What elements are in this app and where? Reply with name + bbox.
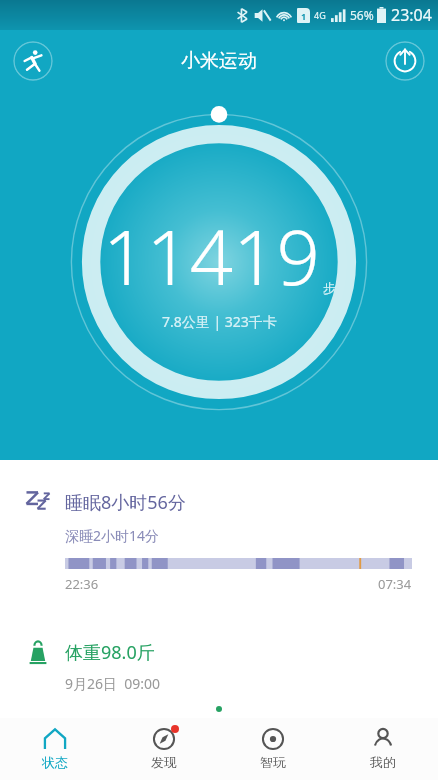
button[interactable]: 我的: [328, 718, 438, 780]
staticText: 体重98.0斤: [65, 640, 155, 665]
staticText: 4G: [314, 9, 326, 21]
other: Bluetooth: [236, 7, 249, 24]
staticText: 智玩: [260, 754, 286, 770]
staticText: 7.8公里 | 323千卡: [162, 312, 277, 331]
staticText: 睡眠8小时56分: [65, 490, 186, 515]
button[interactable]: Start running: [13, 41, 53, 81]
staticText: 小米运动: [181, 49, 257, 73]
staticText: 我的: [370, 754, 396, 770]
staticText: 56%: [350, 7, 374, 23]
other: Signal strength: [330, 8, 347, 23]
staticText: 步: [323, 280, 336, 296]
button[interactable]: 睡眠8小时56分: [0, 460, 438, 622]
staticText: 11419: [103, 204, 320, 308]
button[interactable]: 体重98.0斤: [0, 622, 438, 702]
staticText: 状态: [42, 754, 68, 770]
staticText: 发现: [151, 754, 177, 770]
staticText: 深睡2小时14分: [65, 526, 160, 545]
button[interactable]: Share: [385, 41, 425, 81]
staticText: 9月26日 09:00: [65, 674, 161, 693]
other: Battery 56%: [377, 7, 386, 23]
staticText: 07:34: [378, 575, 412, 593]
button[interactable]: 发现: [109, 718, 218, 780]
other: Silent mode: [254, 8, 271, 23]
staticText: 23:04: [391, 4, 432, 26]
button[interactable]: 智玩: [218, 718, 328, 780]
staticText: 22:36: [65, 575, 99, 593]
button[interactable]: 状态: [0, 718, 109, 780]
other: Wi-Fi: [276, 8, 292, 23]
staticText: 1: [301, 10, 307, 22]
